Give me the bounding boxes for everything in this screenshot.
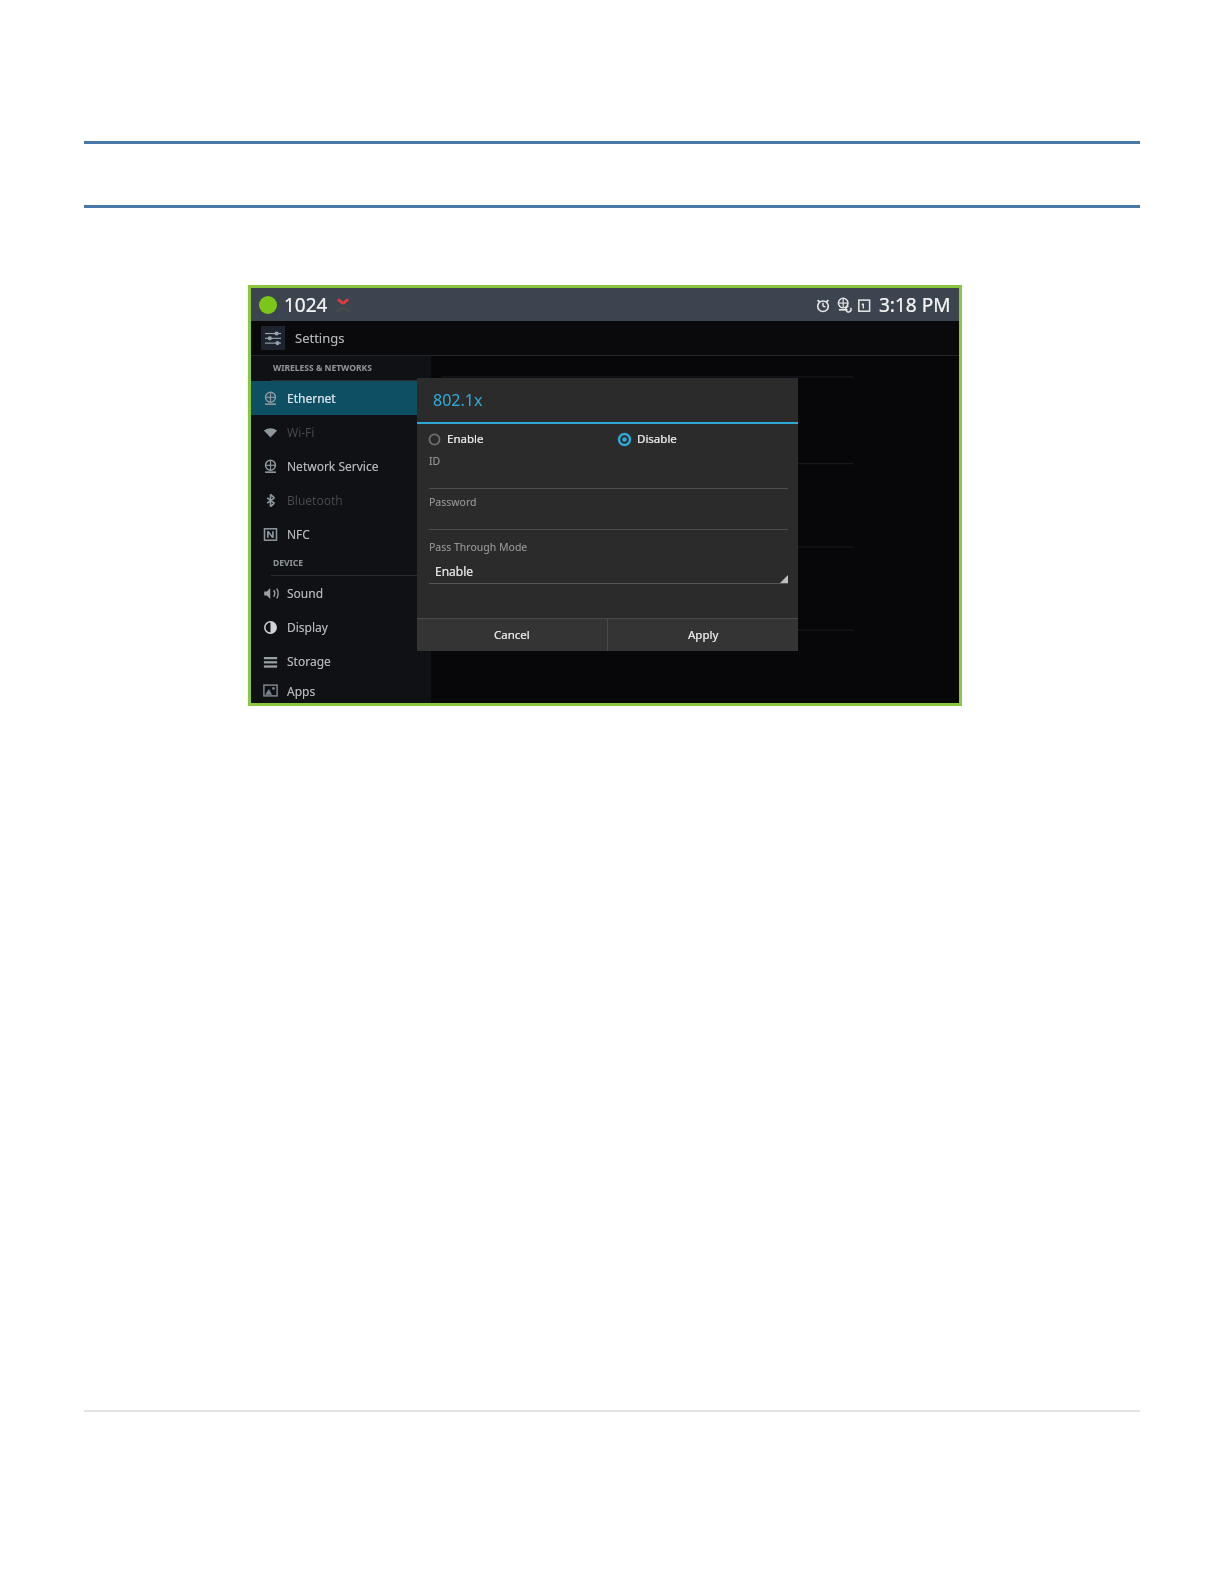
staticText: Apply bbox=[688, 627, 719, 643]
button[interactable]: Enable bbox=[417, 424, 607, 454]
button[interactable]: Display bbox=[251, 610, 431, 644]
button[interactable]: Ethernet bbox=[251, 381, 431, 415]
button[interactable]: Settings app icon bbox=[251, 321, 959, 355]
button[interactable]: Disable bbox=[607, 424, 798, 454]
button[interactable]: Apply bbox=[608, 619, 798, 651]
staticText: Ethernet bbox=[287, 390, 336, 406]
staticText: DEVICE bbox=[273, 557, 304, 569]
staticText: Enable bbox=[435, 563, 474, 579]
button[interactable]: NFC bbox=[251, 517, 431, 551]
button[interactable]: Bluetooth bbox=[251, 483, 431, 517]
button[interactable]: Storage bbox=[251, 644, 431, 678]
staticText: 1024 bbox=[284, 292, 328, 318]
staticText: ID bbox=[429, 454, 441, 468]
staticText: Password bbox=[429, 495, 477, 509]
button[interactable]: Network Service bbox=[251, 449, 431, 483]
staticText: Bluetooth bbox=[287, 492, 343, 508]
button[interactable]: Password bbox=[429, 495, 788, 536]
staticText: Storage bbox=[287, 653, 331, 669]
staticText: Enable bbox=[447, 431, 484, 447]
staticText: Display bbox=[287, 619, 328, 635]
button[interactable]: Apps bbox=[251, 678, 431, 703]
staticText: Settings bbox=[295, 329, 345, 347]
staticText: WIRELESS & NETWORKS bbox=[273, 362, 372, 374]
button[interactable]: Wi-Fi bbox=[251, 415, 431, 449]
staticText: NFC bbox=[287, 526, 310, 542]
button[interactable]: ID bbox=[429, 454, 788, 495]
staticText: Pass Through Mode bbox=[429, 540, 528, 554]
button[interactable]: Sound bbox=[251, 576, 431, 610]
staticText: Apps bbox=[287, 683, 316, 699]
staticText: 3:18 PM bbox=[879, 292, 951, 318]
button[interactable]: Enable bbox=[429, 559, 788, 583]
staticText: Cancel bbox=[494, 627, 530, 643]
button[interactable]: Cancel bbox=[417, 619, 607, 651]
staticText: Disable bbox=[637, 431, 677, 447]
staticText: 802.1x bbox=[433, 389, 483, 411]
staticText: Wi-Fi bbox=[287, 424, 315, 440]
staticText: Sound bbox=[287, 585, 324, 601]
other: Open dropdown bbox=[780, 575, 788, 583]
staticText: Network Service bbox=[287, 458, 379, 474]
other: Settings app icon bbox=[261, 326, 285, 350]
